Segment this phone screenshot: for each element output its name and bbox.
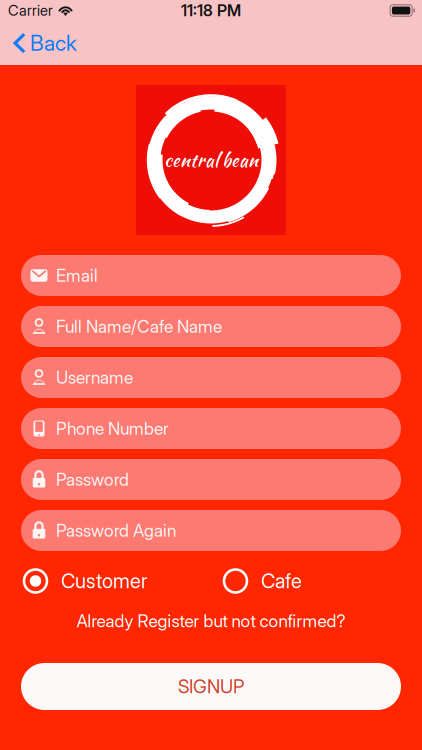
staticText: Cafe: [261, 569, 302, 593]
button[interactable]: Username: [21, 357, 401, 398]
button[interactable]: Email: [21, 255, 401, 296]
staticText: Full Name/Cafe Name: [56, 316, 222, 337]
staticText: Customer: [61, 569, 147, 593]
button[interactable]: Already Register but not confirmed?: [0, 610, 422, 632]
staticText: Password: [56, 469, 129, 490]
staticText: Phone Number: [56, 418, 169, 439]
button[interactable]: Password: [21, 459, 401, 500]
button[interactable]: SIGNUP: [21, 663, 401, 710]
button[interactable]: Cafe: [224, 568, 323, 594]
button[interactable]: Customer: [24, 568, 224, 594]
staticText: central bean: [164, 146, 258, 174]
button[interactable]: Password Again: [21, 510, 401, 551]
button[interactable]: Phone Number: [21, 408, 401, 449]
staticText: Password Again: [56, 520, 176, 541]
button[interactable]: Back: [0, 25, 87, 61]
staticText: Carrier: [8, 2, 53, 19]
staticText: Email: [56, 265, 98, 286]
staticText: Back: [30, 30, 77, 56]
staticText: SIGNUP: [178, 675, 244, 698]
staticText: 11:18 PM: [181, 1, 241, 20]
staticText: Already Register but not confirmed?: [76, 610, 345, 631]
button[interactable]: Full Name/Cafe Name: [21, 306, 401, 347]
staticText: Username: [56, 367, 133, 388]
